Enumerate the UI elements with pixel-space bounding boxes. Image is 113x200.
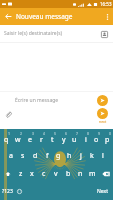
staticText: 4 xyxy=(43,131,46,136)
button[interactable]: a xyxy=(5,147,17,165)
staticText: 3 xyxy=(32,131,35,136)
staticText: p xyxy=(105,135,110,145)
staticText: 6 xyxy=(65,131,68,136)
button[interactable]: 7 xyxy=(69,129,80,147)
button[interactable]: Backspace xyxy=(98,165,113,183)
button[interactable]: ?123 xyxy=(0,183,15,200)
button[interactable]: f xyxy=(41,147,53,165)
staticText: i xyxy=(85,135,87,145)
button[interactable]: 4 xyxy=(36,129,47,147)
button[interactable]: 9 xyxy=(91,129,102,147)
button[interactable]: More options xyxy=(101,8,113,25)
button[interactable]: 0 xyxy=(102,129,113,147)
button[interactable]: Contacts xyxy=(98,28,110,40)
staticText: 7 xyxy=(76,131,79,136)
staticText: k xyxy=(90,151,94,161)
button[interactable]: 3 xyxy=(24,129,36,147)
button[interactable]: l xyxy=(97,147,108,165)
staticText: r xyxy=(40,135,43,145)
staticText: q xyxy=(4,135,9,145)
staticText: 8 xyxy=(87,131,90,136)
button[interactable]: m xyxy=(86,165,98,183)
staticText: c xyxy=(42,169,46,179)
button[interactable]: Emoji xyxy=(15,183,24,200)
staticText: ?123 xyxy=(2,188,13,195)
staticText: 2 xyxy=(20,131,23,136)
staticText: u xyxy=(72,135,77,145)
button[interactable]: n xyxy=(74,165,86,183)
button[interactable]: d xyxy=(29,147,41,165)
staticText: w xyxy=(15,135,21,145)
button[interactable]: k xyxy=(86,147,97,165)
staticText: 1 xyxy=(8,131,11,136)
button[interactable]: Shift xyxy=(0,165,15,183)
staticText: l xyxy=(102,151,104,161)
button[interactable]: Next xyxy=(91,183,113,200)
button[interactable]: Back xyxy=(0,8,16,25)
button[interactable]: 2 xyxy=(12,129,24,147)
button[interactable]: 5 xyxy=(47,129,58,147)
button[interactable]: 8 xyxy=(80,129,91,147)
staticText: y xyxy=(62,135,66,145)
button[interactable]: 6 xyxy=(58,129,69,147)
staticText: Nouveau message xyxy=(16,12,73,21)
button[interactable]: g xyxy=(53,147,64,165)
staticText: 5 xyxy=(54,131,57,136)
staticText: 0 xyxy=(109,131,112,136)
staticText: h xyxy=(67,151,72,161)
button[interactable]: c xyxy=(38,165,50,183)
staticText: next xyxy=(99,119,107,124)
button[interactable]: x xyxy=(26,165,38,183)
button[interactable]: Next xyxy=(97,108,108,119)
staticText: t xyxy=(51,135,54,145)
staticText: Next xyxy=(97,188,108,195)
button[interactable]: s xyxy=(17,147,29,165)
staticText: j xyxy=(80,151,82,161)
staticText: v xyxy=(54,169,58,179)
staticText: a xyxy=(9,151,13,161)
button[interactable]: v xyxy=(50,165,62,183)
staticText: Saisir le(s) destinataire(s) xyxy=(4,30,63,37)
button[interactable]: z xyxy=(15,165,26,183)
button[interactable]: h xyxy=(64,147,75,165)
staticText: s xyxy=(21,151,25,161)
button[interactable]: Send xyxy=(97,95,108,106)
staticText: o xyxy=(94,135,99,145)
staticText: 16:53 xyxy=(100,1,112,7)
button[interactable]: b xyxy=(62,165,74,183)
button[interactable]: 1 xyxy=(0,129,12,147)
button[interactable]: j xyxy=(75,147,86,165)
button[interactable]: Attach file xyxy=(3,109,14,120)
staticText: m xyxy=(89,169,96,179)
staticText: g xyxy=(56,151,61,161)
staticText: f xyxy=(46,151,49,161)
staticText: z xyxy=(19,169,23,179)
staticText: x xyxy=(30,169,34,179)
staticText: Écrire un message xyxy=(15,97,59,104)
staticText: n xyxy=(78,169,83,179)
staticText: 9 xyxy=(98,131,101,136)
staticText: d xyxy=(33,151,38,161)
staticText: e xyxy=(28,135,32,145)
staticText: b xyxy=(66,169,71,179)
